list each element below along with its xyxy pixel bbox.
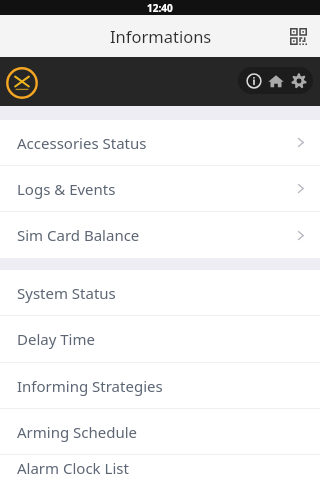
- staticText: Alarm Clock List: [17, 458, 129, 478]
- staticText: Sim Card Balance: [17, 225, 140, 245]
- button[interactable]: Informing Strategies: [0, 363, 320, 409]
- button[interactable]: Scan QR code: [282, 20, 314, 52]
- button[interactable]: Information: [242, 70, 265, 92]
- button[interactable]: Logs & Events: [0, 166, 320, 212]
- button[interactable]: Arming Schedule: [0, 409, 320, 455]
- button[interactable]: Logo: [6, 67, 38, 99]
- staticText: Informing Strategies: [17, 376, 163, 396]
- button[interactable]: Sim Card Balance: [0, 212, 320, 259]
- button[interactable]: Home: [264, 70, 287, 92]
- button[interactable]: Accessories Status: [0, 120, 320, 166]
- staticText: Logs & Events: [17, 179, 116, 199]
- staticText: Informations: [110, 25, 212, 47]
- button[interactable]: Settings: [287, 70, 310, 92]
- button[interactable]: Alarm Clock List: [0, 455, 320, 480]
- staticText: System Status: [17, 283, 116, 303]
- button[interactable]: System Status: [0, 270, 320, 316]
- staticText: 12:40: [147, 1, 173, 15]
- staticText: Accessories Status: [17, 133, 147, 153]
- staticText: Arming Schedule: [17, 422, 138, 442]
- button[interactable]: Delay Time: [0, 316, 320, 363]
- staticText: Delay Time: [17, 329, 95, 349]
